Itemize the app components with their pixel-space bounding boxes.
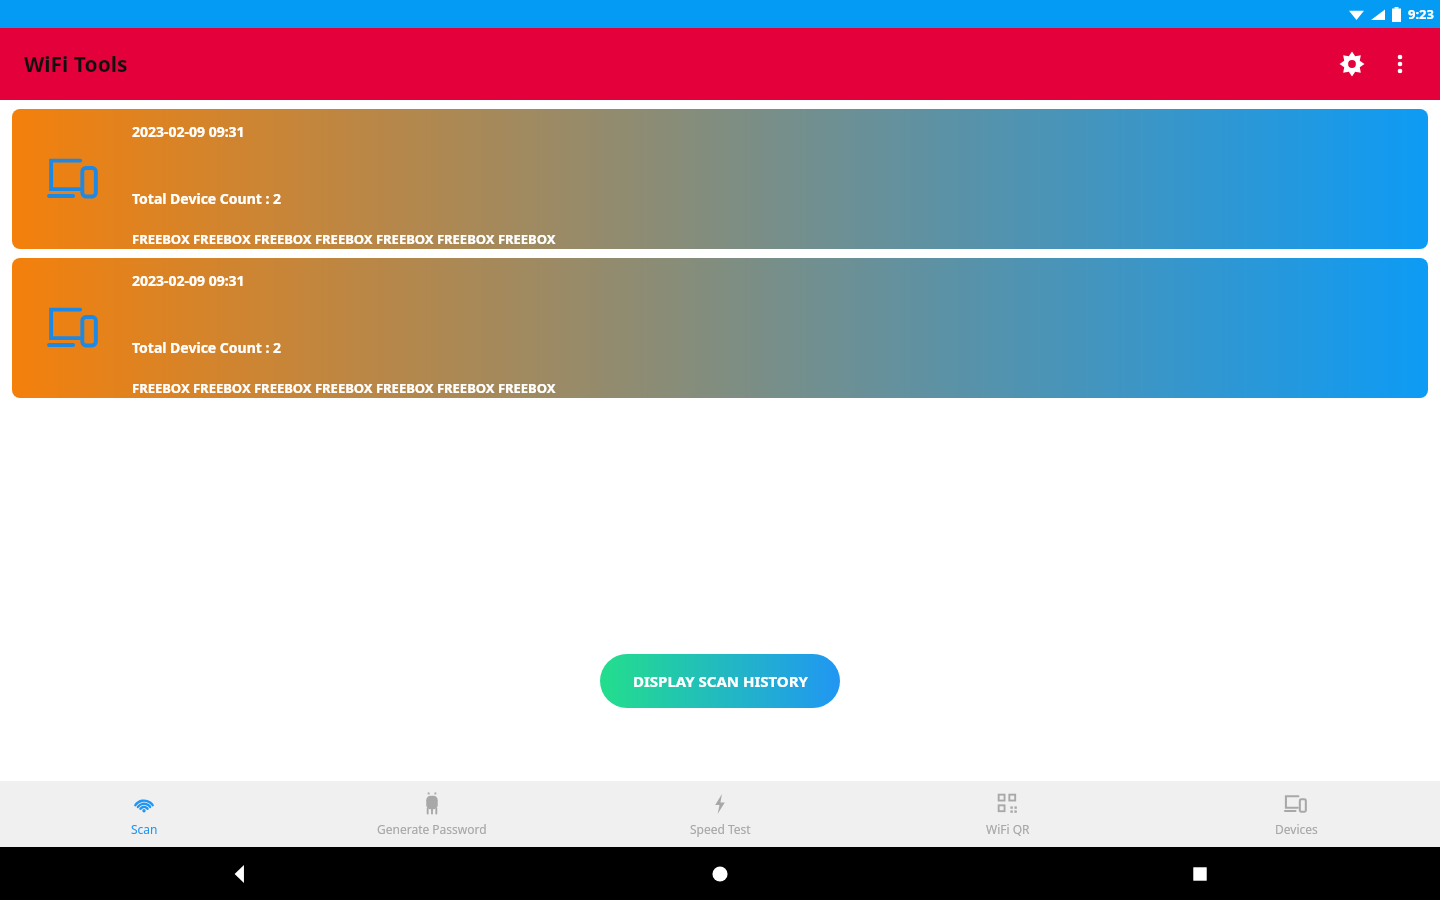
staticText: Total Device Count : 2 <box>132 338 282 357</box>
button[interactable]: Home <box>711 865 729 883</box>
staticText: Total Device Count : 2 <box>132 189 282 208</box>
button[interactable]: Back <box>231 865 249 883</box>
button[interactable]: 2023-02-09 09:31 <box>12 109 1428 249</box>
staticText: FREEBOX FREEBOX FREEBOX FREEBOX FREEBOX … <box>132 230 556 248</box>
staticText: Generate Password <box>377 821 487 837</box>
button[interactable]: 2023-02-09 09:31 <box>12 258 1428 398</box>
button[interactable]: DISPLAY SCAN HISTORY <box>600 654 840 708</box>
staticText: 9:23 <box>1408 5 1434 23</box>
staticText: FREEBOX FREEBOX FREEBOX FREEBOX FREEBOX … <box>132 379 556 397</box>
staticText: Devices <box>1275 821 1318 837</box>
staticText: Speed Test <box>690 821 751 837</box>
button[interactable]: Recents <box>1192 866 1208 882</box>
staticText: 2023-02-09 09:31 <box>132 271 245 290</box>
staticText: WiFi QR <box>986 821 1030 837</box>
button[interactable]: Scan <box>0 781 288 847</box>
staticText: 2023-02-09 09:31 <box>132 122 245 141</box>
button[interactable]: Generate Password <box>288 781 576 847</box>
staticText: DISPLAY SCAN HISTORY <box>633 671 808 691</box>
staticText: Scan <box>131 821 158 837</box>
staticText: WiFi Tools <box>24 50 128 79</box>
button[interactable]: Speed Test <box>576 781 864 847</box>
button[interactable]: Devices <box>1152 781 1440 847</box>
button[interactable]: WiFi QR <box>864 781 1152 847</box>
button[interactable]: More options <box>1376 40 1424 88</box>
button[interactable]: Settings <box>1328 40 1376 88</box>
